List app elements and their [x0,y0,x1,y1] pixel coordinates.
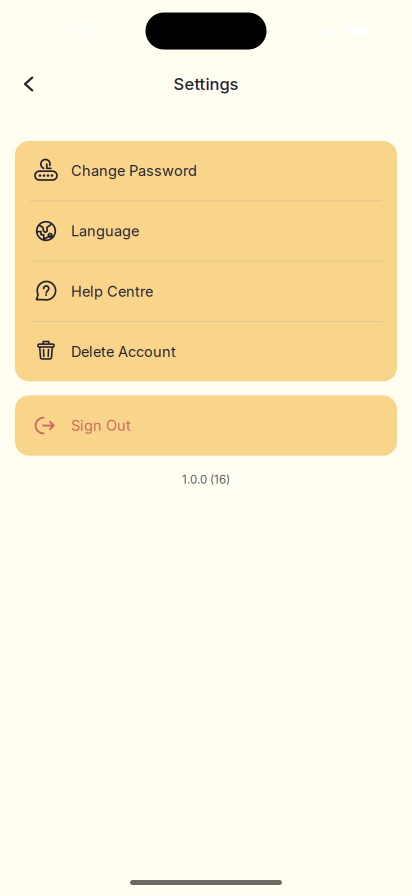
button[interactable]: Language [15,201,397,261]
staticText: Settings [173,74,238,94]
staticText: Help Centre [71,283,153,300]
staticText: 5:42 [61,22,96,40]
button[interactable]: Change Password [15,141,397,200]
staticText: Delete Account [71,343,176,360]
staticText: Change Password [71,162,197,179]
button[interactable]: Sign Out [15,395,397,456]
button[interactable]: Back [5,62,49,106]
button[interactable]: Help Centre [15,262,397,321]
staticText: Sign Out [71,417,131,434]
staticText: 1.0.0 (16) [182,473,230,487]
button[interactable]: Delete Account [15,322,397,381]
staticText: Language [71,222,139,240]
